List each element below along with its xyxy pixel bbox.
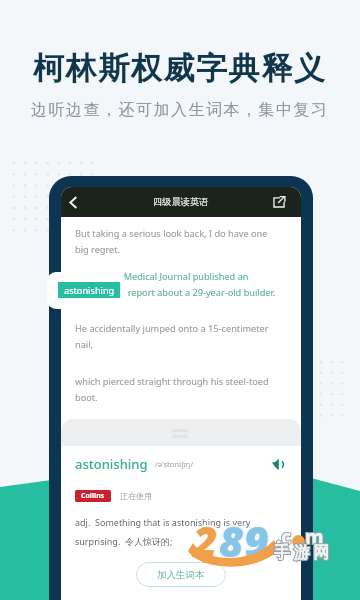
staticText: adj. Something that is astonishing is ve… bbox=[75, 516, 287, 548]
button[interactable]: 加入生词本 bbox=[136, 562, 226, 587]
staticText: But taking a serious look back, I do hav… bbox=[75, 227, 268, 255]
staticText: 89 bbox=[219, 512, 270, 569]
staticText: 四级晨读英语 bbox=[153, 196, 209, 208]
staticText: m bbox=[305, 524, 324, 550]
staticText: 89 bbox=[219, 512, 270, 569]
staticText: 手游网 bbox=[274, 543, 333, 563]
staticText: astonishing bbox=[64, 284, 115, 297]
staticText: .c bbox=[276, 524, 292, 550]
staticText: 正在使用 bbox=[120, 491, 152, 501]
staticText: astonishing bbox=[75, 455, 148, 473]
staticText: 加入生词本 bbox=[157, 569, 205, 581]
button[interactable]: Back bbox=[63, 192, 83, 212]
staticText: 边听边查，还可加入生词本，集中复习 bbox=[31, 100, 329, 120]
button[interactable]: Share bbox=[269, 192, 289, 212]
staticText: 2 bbox=[193, 512, 219, 569]
staticText: 柯林斯权威字典释义 bbox=[33, 49, 327, 88]
staticText: which pierced straight through his steel… bbox=[75, 375, 269, 403]
staticText: 2 bbox=[193, 512, 219, 569]
staticText: m bbox=[305, 524, 324, 550]
staticText: .c bbox=[276, 524, 292, 550]
button[interactable]: Play pronunciation bbox=[269, 455, 287, 473]
staticText: Collins bbox=[81, 491, 105, 501]
staticText: 手游网 bbox=[274, 543, 333, 563]
staticText: The British Medical Journal published an… bbox=[75, 270, 276, 298]
staticText: /ə'stɒnɪʃɪŋ/ bbox=[155, 459, 194, 469]
staticText: He accidentally jumped onto a 15-centime… bbox=[75, 322, 269, 350]
